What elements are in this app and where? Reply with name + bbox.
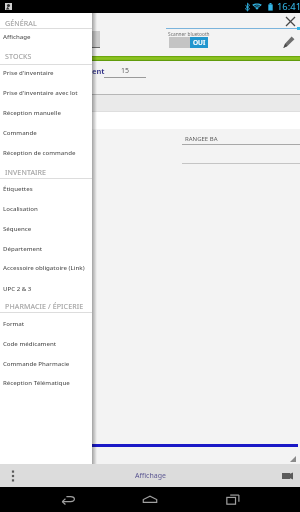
button[interactable]: More options	[6, 469, 20, 483]
staticText: Réception Télématique	[3, 378, 70, 386]
staticText: Réception de commande	[3, 148, 76, 156]
staticText: INVENTAIRE	[5, 167, 47, 177]
staticText: Affichage	[3, 32, 31, 40]
button[interactable]: Étiquettes	[0, 178, 92, 198]
button[interactable]: Spinner	[86, 31, 100, 48]
button[interactable]: Département	[0, 238, 92, 258]
staticText: Commande	[3, 128, 37, 136]
button[interactable]: Prise d'inventaire avec lot	[0, 82, 92, 102]
staticText: Réception manuelle	[3, 108, 61, 116]
staticText: Localisation	[3, 204, 38, 212]
staticText: Commande Pharmacie	[3, 359, 70, 367]
staticText: Prise d'inventaire avec lot	[3, 88, 78, 96]
button[interactable]: Video call	[281, 469, 295, 483]
staticText: GÉNÉRAL	[5, 18, 37, 28]
button[interactable]: Commande Pharmacie	[0, 353, 92, 373]
button[interactable]: Edit	[281, 35, 295, 49]
button[interactable]: Affichage	[0, 26, 92, 46]
staticText: 16:41	[277, 0, 300, 13]
button[interactable]: Recents	[218, 487, 248, 512]
staticText: Prise d'inventaire	[3, 68, 54, 76]
staticText: Étiquettes	[3, 184, 33, 192]
button[interactable]: Localisation	[0, 198, 92, 218]
staticText: PHARMACIE / ÉPICERIE	[5, 301, 84, 311]
button[interactable]: Prise d'inventaire	[0, 62, 92, 82]
button[interactable]: Réception manuelle	[0, 102, 92, 122]
button[interactable]: Commande	[0, 122, 92, 142]
button[interactable]: Séquence	[0, 218, 92, 238]
button[interactable]: Réception Télématique	[0, 372, 92, 392]
button[interactable]: Affichage	[131, 467, 170, 485]
button[interactable]: Code médicament	[0, 333, 92, 353]
button[interactable]: Close	[285, 16, 296, 27]
staticText: Séquence	[3, 224, 32, 232]
button[interactable]: Home	[135, 487, 165, 512]
staticText: ent	[92, 66, 105, 76]
staticText: OUI	[193, 38, 206, 47]
staticText: Département	[3, 244, 43, 252]
staticText: Scanner bluetooth	[168, 31, 210, 38]
staticText: Affichage	[135, 471, 166, 481]
staticText: UPC 2 & 3	[3, 284, 32, 292]
staticText: Code médicament	[3, 339, 57, 347]
staticText: STOCKS	[5, 51, 32, 61]
button[interactable]: Accessoire obligatoire (Link)	[0, 257, 92, 277]
staticText: 15	[121, 66, 130, 76]
staticText: RANGEE BA	[185, 135, 218, 143]
button[interactable]: OUI	[169, 37, 208, 48]
button[interactable]: Réception de commande	[0, 142, 92, 162]
button[interactable]: Back	[53, 487, 83, 512]
button[interactable]: Format	[0, 313, 92, 333]
staticText: Accessoire obligatoire (Link)	[3, 263, 85, 271]
staticText: Format	[3, 319, 25, 327]
button[interactable]: UPC 2 & 3	[0, 278, 92, 298]
